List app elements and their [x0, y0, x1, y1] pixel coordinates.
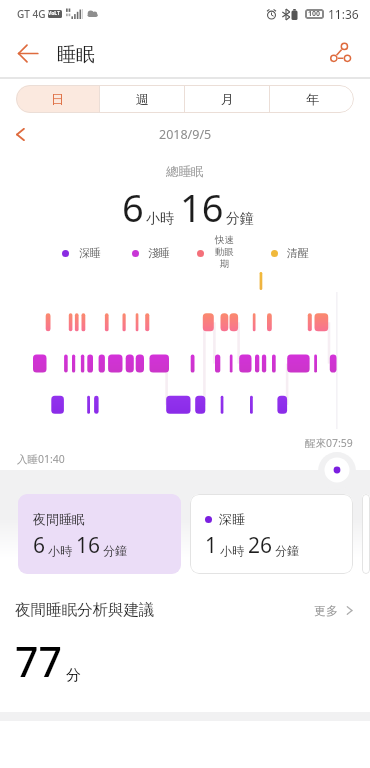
staticText: 淺睡: [148, 246, 170, 260]
staticText: 深睡: [219, 511, 245, 527]
staticText: 夜間睡眠: [33, 511, 85, 527]
staticText: 1: [205, 531, 218, 560]
staticText: 小時: [48, 543, 72, 558]
button[interactable]: Share: [320, 33, 360, 73]
staticText: 小時: [220, 543, 244, 558]
staticText: 分: [66, 666, 81, 685]
staticText: GT 4G: [17, 7, 46, 21]
button[interactable]: 深睡: [190, 494, 353, 574]
staticText: 分鐘: [275, 543, 299, 558]
button[interactable]: 日: [16, 85, 99, 113]
button[interactable]: Previous day: [8, 122, 32, 146]
staticText: 入睡01:40: [17, 452, 65, 466]
staticText: 77: [15, 633, 62, 689]
button[interactable]: [362, 494, 370, 574]
staticText: 100: [308, 9, 321, 19]
button[interactable]: 夜間睡眠: [18, 494, 181, 574]
staticText: 總睡眠: [166, 164, 204, 180]
staticText: 6: [122, 181, 144, 233]
staticText: 清醒: [287, 246, 309, 260]
staticText: 夜間睡眠分析與建議: [15, 600, 155, 620]
staticText: 小時: [146, 210, 174, 228]
staticText: 月: [221, 91, 234, 107]
staticText: 分鐘: [226, 210, 254, 228]
button[interactable]: Back: [8, 33, 48, 73]
staticText: 週: [136, 91, 149, 107]
staticText: 醒來07:59: [305, 436, 353, 450]
button[interactable]: 週: [100, 85, 184, 113]
staticText: 分鐘: [103, 543, 127, 558]
staticText: 16: [180, 181, 224, 233]
staticText: 更多: [314, 603, 338, 618]
button[interactable]: 年: [270, 85, 354, 113]
staticText: 睡眠: [57, 43, 95, 67]
staticText: VoLTE: [48, 10, 62, 18]
staticText: 2018/9/5: [159, 126, 212, 143]
staticText: 16: [76, 531, 101, 560]
staticText: 深睡: [79, 246, 101, 260]
staticText: 日: [51, 91, 64, 107]
staticText: 年: [306, 91, 319, 107]
staticText: 6: [33, 531, 46, 560]
button[interactable]: 月: [185, 85, 269, 113]
button[interactable]: 夜間睡眠分析與建議: [15, 598, 355, 622]
staticText: 快速動眼期: [214, 234, 235, 269]
staticText: 11:36: [328, 6, 359, 22]
staticText: 26: [248, 531, 273, 560]
